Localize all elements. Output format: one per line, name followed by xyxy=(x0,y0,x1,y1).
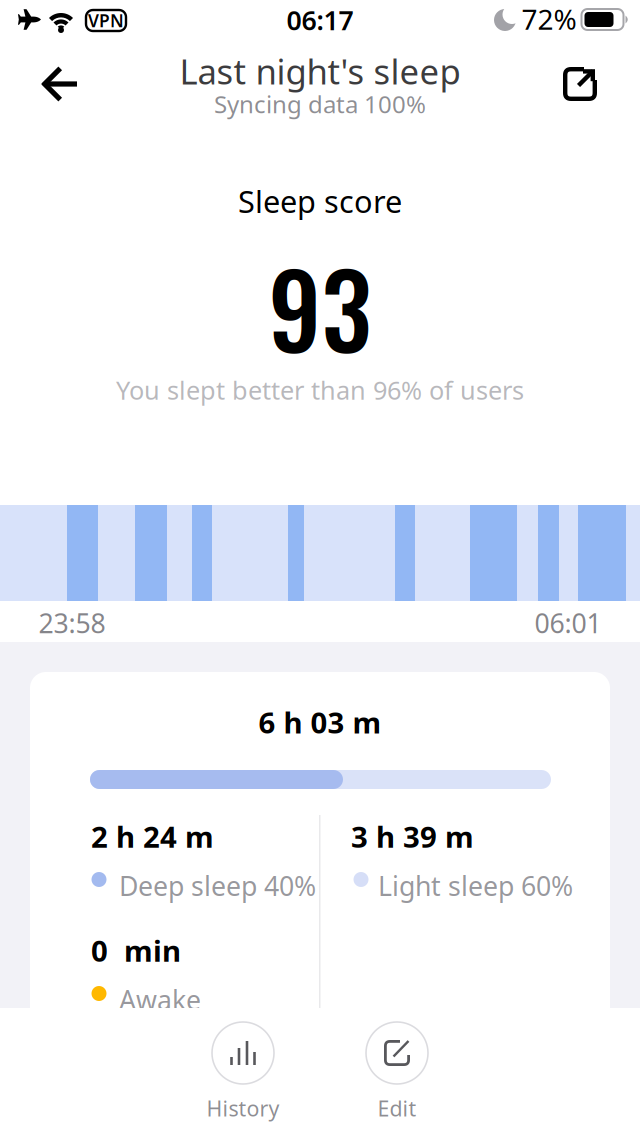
staticText: Edit xyxy=(377,1094,416,1122)
staticText: Deep sleep 40% xyxy=(119,868,316,903)
staticText: 06:01 xyxy=(534,605,601,641)
staticText: 23:58 xyxy=(38,605,105,641)
staticText: Light sleep 60% xyxy=(378,868,573,903)
staticText: 93 xyxy=(268,232,371,382)
staticText: Awake xyxy=(119,982,201,1017)
staticText: 6 h 03 m xyxy=(258,702,381,741)
staticText: 06:17 xyxy=(286,2,353,38)
staticText: 3 h 39 m xyxy=(351,817,474,856)
button[interactable]: History xyxy=(183,1022,303,1122)
staticText: Last night's sleep xyxy=(179,48,460,94)
staticText: Sleep score xyxy=(238,181,402,221)
button[interactable]: Back xyxy=(30,54,90,114)
staticText: You slept better than 96% of users xyxy=(116,373,524,407)
button[interactable]: Share xyxy=(552,56,608,112)
staticText: 2 h 24 m xyxy=(91,817,214,856)
staticText: History xyxy=(206,1094,279,1122)
staticText: 72% xyxy=(521,0,576,38)
button[interactable]: Edit xyxy=(337,1022,457,1122)
staticText: VPN xyxy=(88,9,124,32)
staticText: 0 min xyxy=(91,931,181,970)
staticText: Syncing data 100% xyxy=(214,88,426,120)
